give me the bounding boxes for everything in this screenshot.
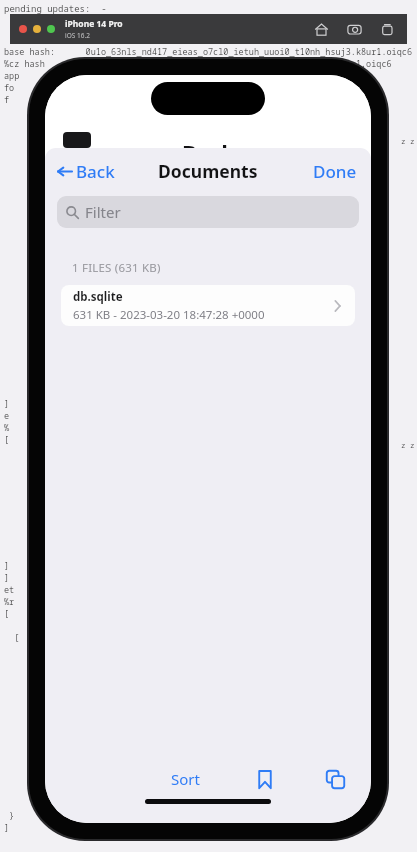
staticText: } bbox=[4, 810, 15, 822]
staticText: pending updates: - bbox=[4, 2, 107, 14]
staticText: %r bbox=[4, 596, 15, 608]
staticText: 1 FILES (631 KB) bbox=[72, 260, 161, 276]
staticText: [ bbox=[4, 632, 20, 644]
staticText: app bbox=[4, 70, 20, 82]
staticText: fo bbox=[4, 82, 15, 94]
staticText: Back bbox=[182, 137, 235, 155]
staticText: e bbox=[4, 410, 10, 422]
button[interactable]: Back bbox=[53, 156, 119, 187]
button[interactable]: Done bbox=[309, 156, 361, 187]
staticText: Back bbox=[76, 160, 115, 183]
button[interactable]: Duplicate bbox=[322, 766, 349, 793]
button[interactable]: Screenshot bbox=[347, 22, 362, 37]
button[interactable]: db.sqlite bbox=[61, 285, 355, 326]
staticText: [ bbox=[4, 434, 10, 446]
staticText: Sort bbox=[171, 769, 200, 789]
button[interactable]: Bookmark bbox=[253, 765, 277, 793]
staticText: 631 KB - 2023-03-20 18:47:28 +0000 bbox=[73, 307, 265, 323]
button[interactable]: Sort bbox=[163, 765, 208, 793]
staticText: z z bbox=[401, 440, 415, 450]
staticText: db.sqlite bbox=[73, 289, 123, 305]
staticText: et bbox=[4, 584, 15, 596]
button[interactable]: Home bbox=[314, 22, 329, 37]
staticText: iOS 16.2 bbox=[65, 31, 90, 40]
staticText: %cz hash 8ur1.oiqc6 bbox=[4, 58, 392, 70]
staticText: f bbox=[4, 94, 10, 106]
staticText: Done bbox=[313, 160, 357, 183]
staticText: Documents bbox=[158, 159, 258, 183]
button[interactable]: Filter bbox=[57, 196, 359, 228]
staticText: ] bbox=[4, 822, 10, 834]
staticText: iPhone 14 Pro bbox=[65, 18, 123, 30]
staticText: Filter bbox=[85, 202, 121, 222]
staticText: % bbox=[4, 422, 10, 434]
staticText: [ bbox=[4, 608, 10, 620]
staticText: ] bbox=[4, 398, 10, 410]
staticText: ] bbox=[4, 560, 10, 572]
staticText: z z bbox=[401, 136, 415, 146]
staticText: base hash: 0u1o_63nls_nd417_eieas_o7cl0_… bbox=[4, 46, 413, 58]
staticText: ] bbox=[4, 572, 10, 584]
button[interactable]: Record screen bbox=[380, 22, 395, 37]
